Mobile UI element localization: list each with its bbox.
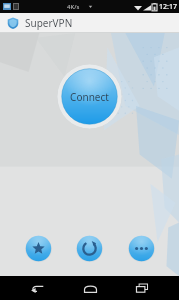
button[interactable]: Favorites <box>25 235 52 262</box>
staticText: 4K/s <box>67 3 80 11</box>
staticText: SuperVPN <box>25 16 73 30</box>
staticText: Connect <box>70 90 109 104</box>
button[interactable]: Connect <box>57 64 122 129</box>
button[interactable]: Refresh <box>76 235 103 262</box>
staticText: 12:17 <box>159 2 177 12</box>
button[interactable]: More options <box>128 235 155 262</box>
button[interactable]: Recent apps <box>127 276 157 300</box>
button[interactable]: Back <box>22 276 52 300</box>
button[interactable]: Home <box>75 276 105 300</box>
